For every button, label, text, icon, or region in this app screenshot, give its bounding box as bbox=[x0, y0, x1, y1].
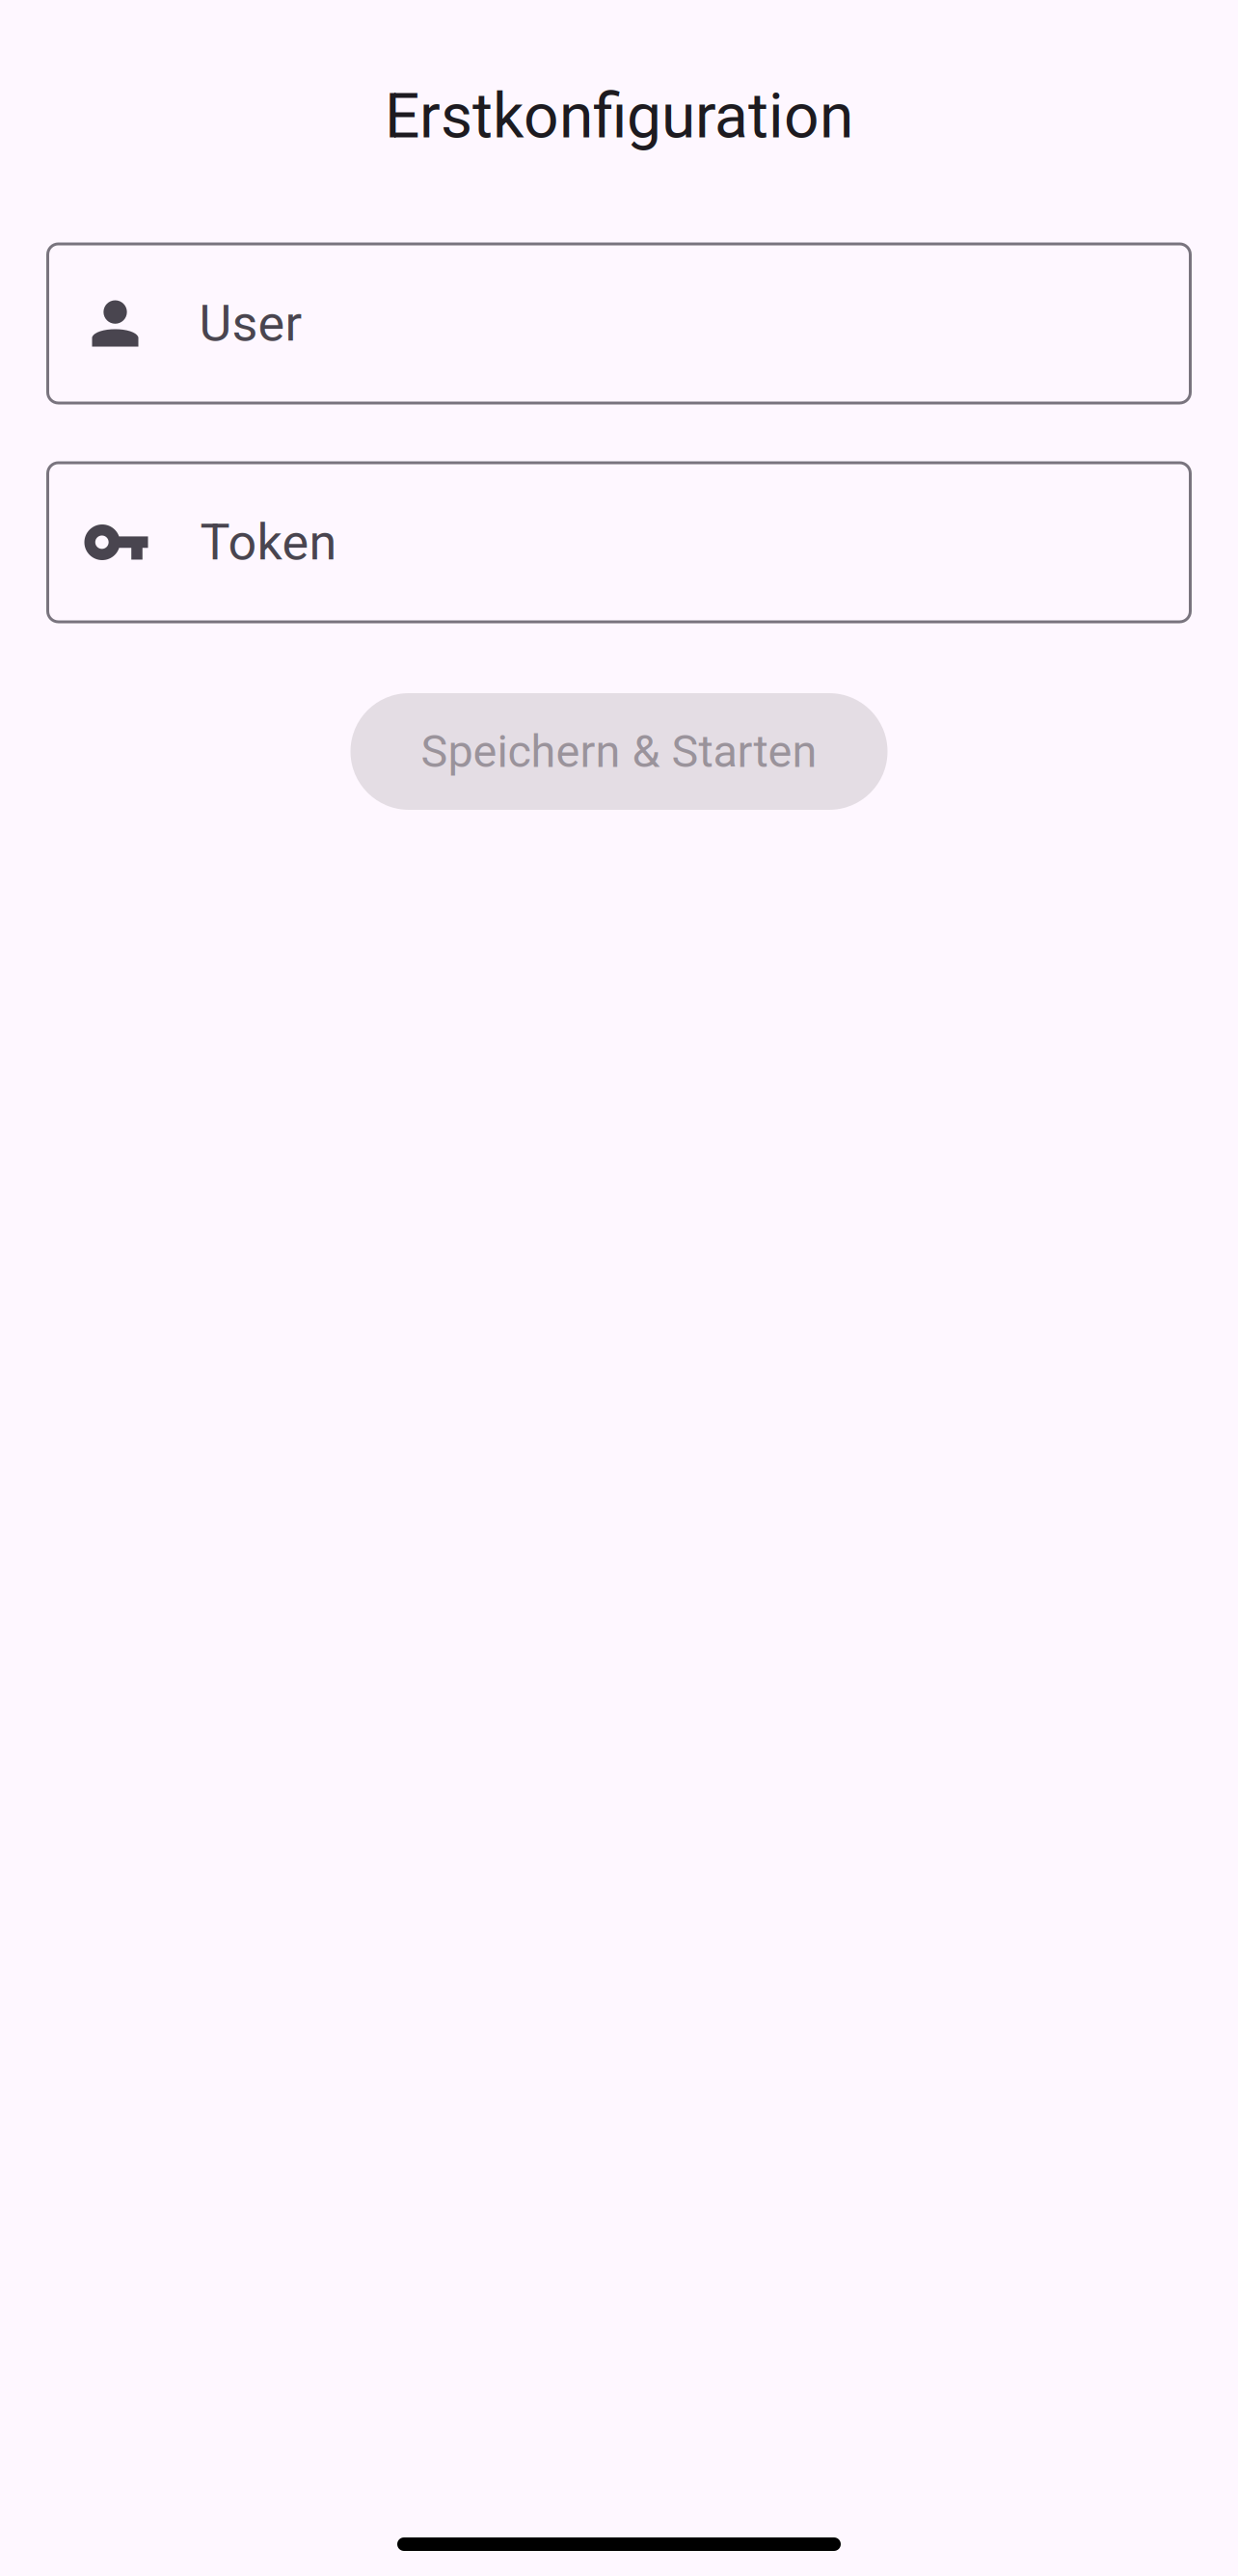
staticText: Token bbox=[200, 513, 337, 572]
staticText: Speichern & Starten bbox=[421, 725, 817, 778]
button[interactable]: User bbox=[48, 244, 1190, 403]
button[interactable]: Token bbox=[48, 463, 1190, 622]
staticText: Erstkonfiguration bbox=[385, 80, 853, 152]
staticText: User bbox=[199, 294, 302, 353]
button[interactable]: Speichern & Starten bbox=[350, 693, 888, 810]
